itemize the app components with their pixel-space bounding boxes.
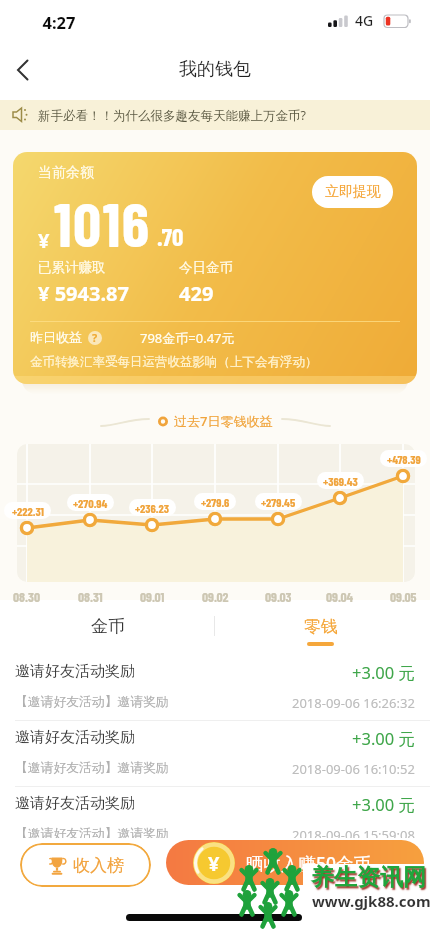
staticText: 09.04 — [326, 588, 354, 604]
staticText: 2018-09-06 16:10:52 — [292, 760, 415, 778]
staticText: 养生资讯网 — [311, 863, 426, 892]
staticText: 798金币=0.47元 — [140, 329, 235, 347]
staticText: 昨日收益 — [30, 329, 82, 345]
staticText: 1016 — [54, 185, 151, 259]
staticText: 邀请好友活动奖励 — [15, 662, 135, 681]
staticText: 09.03 — [265, 588, 292, 604]
staticText: ¥ 5943.87 — [38, 280, 129, 307]
staticText: 429 — [179, 280, 214, 307]
staticText: +478.39 — [387, 452, 421, 466]
button[interactable]: ¥ — [166, 840, 424, 885]
staticText: 2018-09-06 15:59:08 — [292, 826, 415, 844]
button[interactable]: 立即提现 — [312, 176, 393, 208]
button[interactable]: 邀请好友活动奖励 — [0, 721, 430, 787]
staticText: 零钱 — [304, 616, 338, 637]
staticText: +3.00 元 — [352, 727, 415, 750]
staticText: +279.6 — [201, 495, 230, 509]
staticText: +3.00 元 — [352, 793, 415, 816]
staticText: 当前余额 — [38, 164, 94, 182]
button[interactable]: 收入榜 — [20, 843, 151, 887]
staticText: +236.23 — [135, 501, 170, 515]
staticText: 今日金币 — [179, 259, 233, 276]
staticText: 【邀请好友活动】邀请奖励 — [15, 694, 169, 710]
staticText: +3.00 元 — [352, 661, 415, 684]
staticText: 09.02 — [202, 588, 229, 604]
staticText: 09.05 — [390, 588, 417, 604]
staticText: ¥ — [38, 227, 50, 254]
staticText: 金币 — [91, 616, 125, 637]
staticText: 邀请好友活动奖励 — [15, 728, 135, 747]
staticText: 过去7日零钱收益 — [174, 412, 273, 430]
staticText: 09.01 — [140, 588, 165, 604]
staticText: +369.43 — [323, 474, 358, 488]
staticText: +222.31 — [12, 504, 44, 518]
staticText: 4:27 — [24, 11, 94, 33]
staticText: 【邀请好友活动】邀请奖励 — [15, 760, 169, 776]
staticText: +279.45 — [261, 495, 296, 509]
staticText: 收入榜 — [73, 855, 124, 876]
staticText: .70 — [157, 221, 184, 251]
staticText: ? — [92, 330, 98, 345]
staticText: 邀请好友活动奖励 — [15, 794, 135, 813]
staticText: 4G — [355, 11, 374, 30]
button[interactable] — [17, 60, 29, 80]
staticText: 2018-09-06 16:26:32 — [292, 694, 415, 712]
button[interactable]: 邀请好友活动奖励 — [0, 655, 430, 721]
staticText: 08.31 — [78, 588, 103, 604]
staticText: 已累计赚取 — [38, 259, 106, 276]
staticText: www.gjk88.com — [312, 891, 430, 911]
staticText: 晒收入赚50金币 — [246, 851, 372, 875]
staticText: 立即提现 — [325, 183, 381, 201]
staticText: ¥ — [208, 850, 220, 877]
button[interactable]: 新手必看！！为什么很多趣友每天能赚上万金币? — [0, 100, 430, 130]
staticText: 08.30 — [13, 588, 41, 604]
staticText: 新手必看！！为什么很多趣友每天能赚上万金币? — [38, 107, 306, 124]
button[interactable]: 金币 — [40, 606, 175, 646]
button[interactable]: 零钱 — [253, 606, 388, 646]
button[interactable]: 邀请好友活动奖励 — [0, 787, 430, 853]
staticText: 我的钱包 — [0, 58, 430, 81]
staticText: 【邀请好友活动】邀请奖励 — [15, 826, 169, 842]
staticText: 金币转换汇率受每日运营收益影响（上下会有浮动） — [30, 354, 318, 370]
staticText: +270.94 — [73, 496, 108, 510]
